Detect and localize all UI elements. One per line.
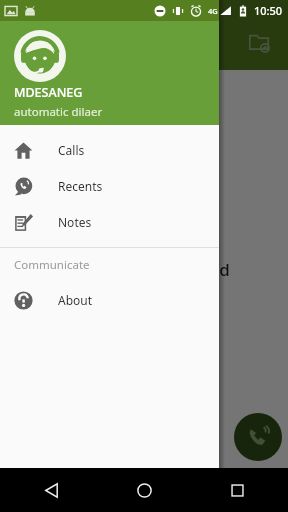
staticText: Recents <box>58 178 103 194</box>
staticText: Calls <box>58 142 85 158</box>
staticText: Communicate <box>14 257 90 273</box>
button[interactable]: Recents <box>0 168 219 204</box>
staticText: 10:50 <box>254 3 283 18</box>
staticText: Good <box>186 258 230 281</box>
button[interactable]: Back <box>34 473 68 507</box>
staticText: Notes <box>58 214 92 230</box>
button[interactable]: Recent apps <box>220 473 254 507</box>
staticText: About <box>58 292 93 308</box>
button[interactable]: Calls <box>0 132 219 168</box>
button[interactable]: Notes <box>0 204 219 240</box>
button[interactable]: About <box>0 282 219 318</box>
staticText: automatic dilaer <box>14 104 103 120</box>
button[interactable]: Home <box>127 473 161 507</box>
button[interactable]: MDESANEG <box>0 21 219 125</box>
staticText: 4G <box>208 6 218 16</box>
button[interactable]: Call <box>234 413 282 461</box>
staticText: MDESANEG <box>14 84 83 101</box>
button[interactable]: Create new folder <box>244 27 274 57</box>
